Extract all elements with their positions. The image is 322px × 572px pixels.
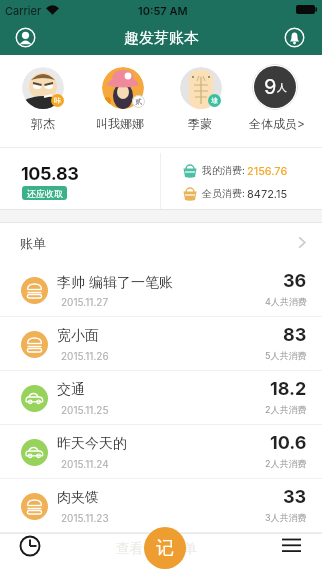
staticText: 宽小面 — [57, 327, 99, 345]
staticText: 李帅 编辑了一笔账 — [57, 273, 173, 291]
button[interactable] — [22, 67, 64, 109]
staticText: 2015.11.24 — [61, 458, 109, 470]
button[interactable]: 还应收取 — [22, 186, 67, 200]
button[interactable]: 李帅 编辑了一笔账 — [0, 263, 322, 317]
button[interactable]: 交通 — [0, 371, 322, 425]
staticText: 4人共消费 — [265, 296, 307, 307]
staticText: 查看全部账单 — [116, 540, 197, 557]
staticText: 季蒙 — [188, 116, 212, 131]
staticText: 18.2 — [270, 378, 307, 400]
staticText: 昨天今天的 — [57, 435, 127, 453]
staticText: 2人共消费 — [265, 404, 307, 415]
staticText: 2156.76 — [247, 164, 288, 177]
staticText: 账单 — [20, 235, 46, 251]
staticText: 36 — [283, 270, 307, 292]
staticText: 记 — [156, 537, 174, 560]
staticText: 人 — [277, 81, 287, 94]
staticText: 还应收取 — [27, 188, 63, 199]
staticText: 交通 — [57, 381, 85, 399]
staticText: 贰 — [135, 97, 142, 106]
button[interactable] — [15, 27, 36, 48]
button[interactable] — [284, 27, 305, 48]
staticText: 2015.11.26 — [61, 350, 109, 362]
staticText: 全员消费: — [202, 187, 245, 200]
staticText: 9 — [264, 75, 277, 99]
staticText: 趣发芽账本 — [124, 29, 199, 48]
staticText: 10:57 AM — [138, 4, 188, 17]
button[interactable] — [102, 67, 144, 109]
staticText: 2015.11.25 — [61, 404, 109, 416]
staticText: 全体成员> — [249, 116, 305, 131]
staticText: 33 — [283, 486, 307, 508]
button[interactable]: 9 — [252, 64, 298, 110]
button[interactable]: 账单 — [0, 223, 322, 263]
button[interactable]: 昨天今天的 — [0, 425, 322, 479]
button[interactable] — [18, 534, 42, 558]
button[interactable]: 肉夹馍 — [0, 479, 322, 533]
staticText: 83 — [283, 324, 307, 346]
staticText: 埭 — [211, 96, 218, 105]
staticText: Carrier — [5, 4, 42, 17]
staticText: 2015.11.27 — [61, 296, 109, 308]
staticText: 2015.11.23 — [61, 512, 109, 524]
staticText: 叫我娜娜 — [96, 116, 144, 131]
staticText: 3人共消费 — [265, 512, 307, 523]
staticText: 郭杰 — [31, 116, 55, 131]
staticText: 5人共消费 — [265, 350, 307, 361]
staticText: 2人共消费 — [265, 458, 307, 469]
staticText: 我的消费: — [202, 164, 245, 177]
staticText: 10.6 — [270, 432, 307, 454]
staticText: 肉夹馍 — [57, 489, 99, 507]
staticText: 咔 — [54, 96, 61, 105]
button[interactable]: 记 — [144, 527, 186, 569]
button[interactable] — [280, 534, 304, 558]
button[interactable]: 宽小面 — [0, 317, 322, 371]
staticText: 105.83 — [21, 163, 79, 185]
staticText: 8472.15 — [247, 187, 288, 200]
button[interactable] — [180, 67, 222, 109]
